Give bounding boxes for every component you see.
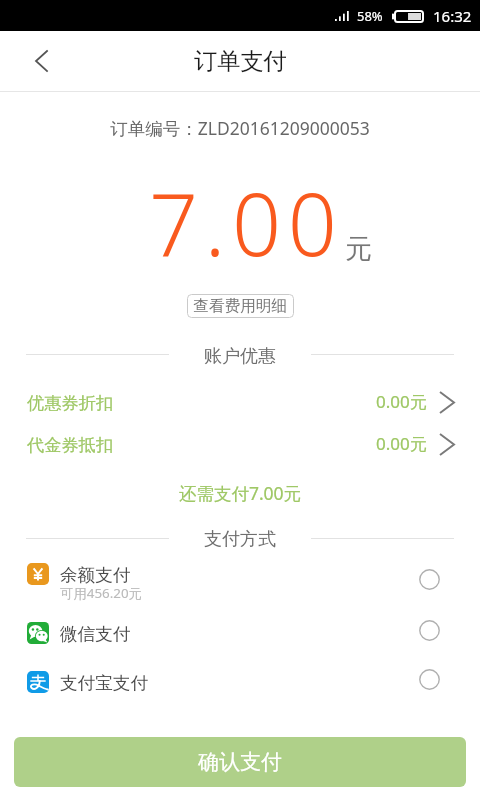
button[interactable]: 代金券抵扣 <box>0 433 480 457</box>
button[interactable]: 微信支付 <box>0 620 480 654</box>
staticText: 元 <box>345 232 372 266</box>
button[interactable]: 支付宝支付 <box>0 669 480 703</box>
staticText: 微信支付 <box>60 623 131 645</box>
button[interactable]: Back <box>0 31 83 88</box>
staticText: 支付方式 <box>0 528 480 551</box>
staticText: 16:32 <box>433 6 472 26</box>
staticText: 58% <box>357 7 383 25</box>
staticText: 支付宝支付 <box>60 672 148 694</box>
staticText: 0.00元 <box>376 432 427 455</box>
staticText: 订单编号：ZLD20161209000053 <box>0 116 480 140</box>
button[interactable]: 查看费用明细 <box>187 294 294 318</box>
button[interactable]: 优惠券折扣 <box>0 391 480 415</box>
button[interactable]: 确认支付 <box>14 737 466 787</box>
staticText: 优惠券折扣 <box>27 392 113 414</box>
staticText: 余额支付 <box>60 564 131 586</box>
staticText: 7.00 <box>149 164 344 281</box>
staticText: 0.00元 <box>376 390 427 413</box>
staticText: 代金券抵扣 <box>27 434 113 456</box>
staticText: 可用456.20元 <box>60 584 143 602</box>
button[interactable]: 余额支付 <box>0 561 480 609</box>
staticText: 查看费用明细 <box>193 296 288 316</box>
staticText: 还需支付7.00元 <box>0 481 480 505</box>
staticText: 确认支付 <box>198 749 282 775</box>
staticText: 账户优惠 <box>0 345 480 368</box>
staticText: 订单支付 <box>194 47 287 76</box>
